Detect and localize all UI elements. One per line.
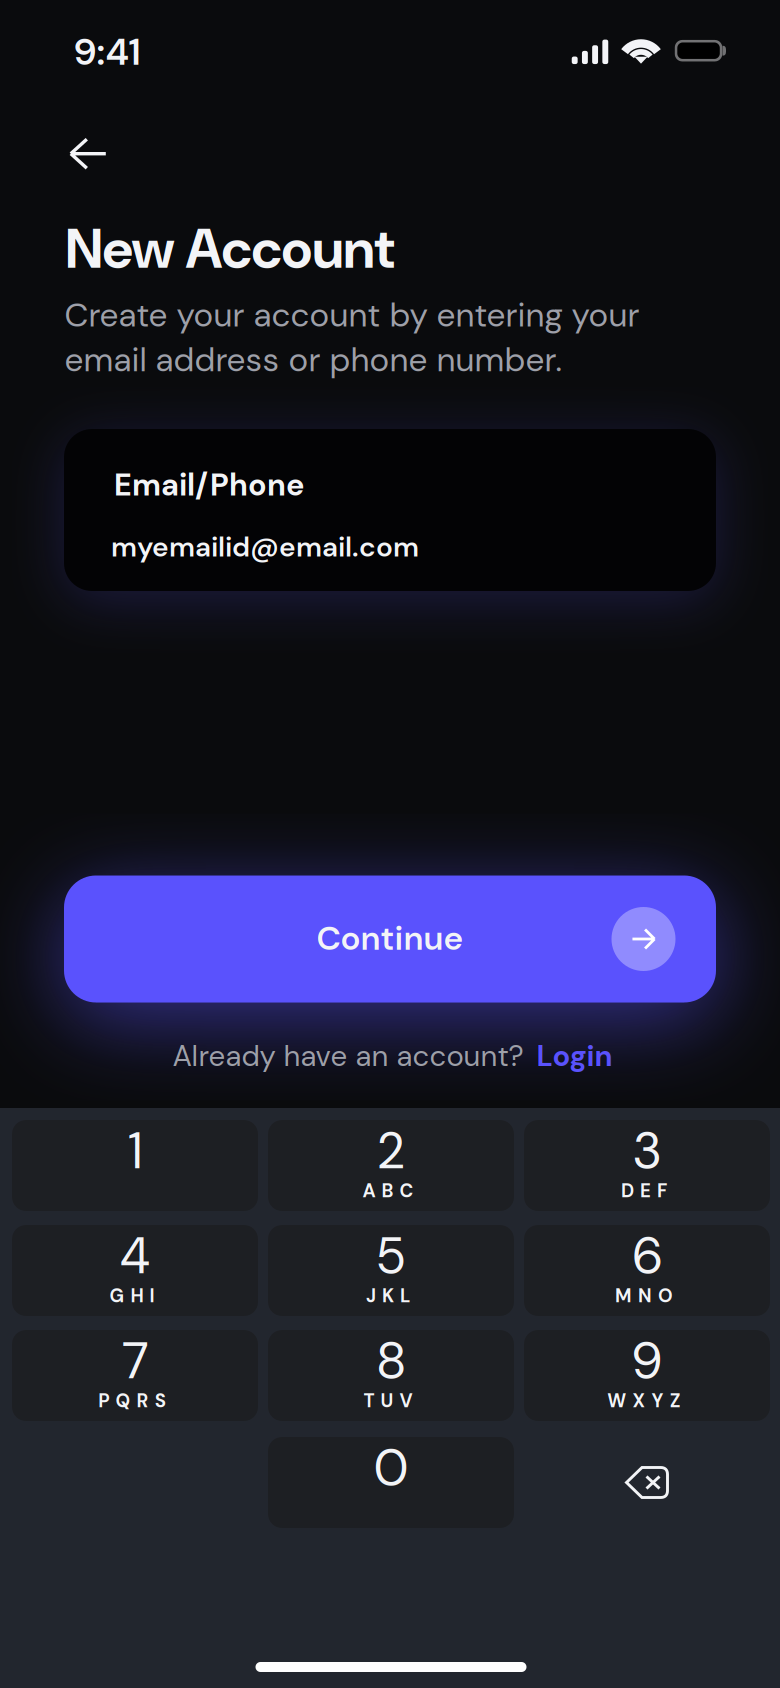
staticText: 9 bbox=[632, 1328, 661, 1394]
staticText: Already have an account? bbox=[172, 1037, 523, 1075]
button[interactable]: 1 bbox=[12, 1120, 258, 1211]
staticText: JKL bbox=[366, 1284, 410, 1308]
button[interactable]: 4 bbox=[12, 1225, 258, 1316]
staticText: Continue bbox=[316, 917, 463, 960]
staticText: 7 bbox=[122, 1328, 148, 1394]
button[interactable]: Back bbox=[40, 112, 136, 196]
staticText: 9:41 bbox=[73, 28, 140, 76]
button[interactable]: 6 bbox=[524, 1225, 770, 1316]
staticText: 3 bbox=[633, 1118, 661, 1184]
staticText: New Account bbox=[65, 213, 394, 285]
button[interactable]: 8 bbox=[268, 1330, 514, 1421]
staticText: MNO bbox=[615, 1284, 673, 1308]
staticText: GHI bbox=[109, 1284, 155, 1308]
staticText: 4 bbox=[120, 1223, 150, 1289]
button[interactable]: Continue bbox=[64, 875, 716, 1002]
staticText: TUV bbox=[363, 1389, 413, 1413]
staticText: ABC bbox=[362, 1179, 414, 1203]
staticText: myemailid@email.com bbox=[111, 529, 419, 565]
button[interactable]: 9 bbox=[524, 1330, 770, 1421]
button[interactable]: 2 bbox=[268, 1120, 514, 1211]
button[interactable]: 3 bbox=[524, 1120, 770, 1211]
staticText: 5 bbox=[377, 1223, 405, 1289]
button[interactable]: 5 bbox=[268, 1225, 514, 1316]
staticText: 1 bbox=[128, 1118, 141, 1184]
staticText: 2 bbox=[378, 1118, 404, 1184]
staticText: 8 bbox=[377, 1328, 405, 1394]
staticText: DEF bbox=[621, 1179, 667, 1203]
staticText: WXYZ bbox=[607, 1389, 681, 1413]
button[interactable]: 7 bbox=[12, 1330, 258, 1421]
staticText: 0 bbox=[374, 1435, 408, 1501]
button[interactable]: Login bbox=[534, 1036, 614, 1076]
staticText: Create your account by entering your ema… bbox=[64, 293, 639, 382]
button[interactable]: 0 bbox=[268, 1437, 514, 1528]
staticText: Login bbox=[536, 1037, 612, 1075]
staticText: Email/Phone bbox=[114, 465, 304, 505]
staticText: PQRS bbox=[98, 1389, 166, 1413]
button[interactable]: Delete bbox=[524, 1437, 770, 1528]
staticText: 6 bbox=[632, 1223, 661, 1289]
